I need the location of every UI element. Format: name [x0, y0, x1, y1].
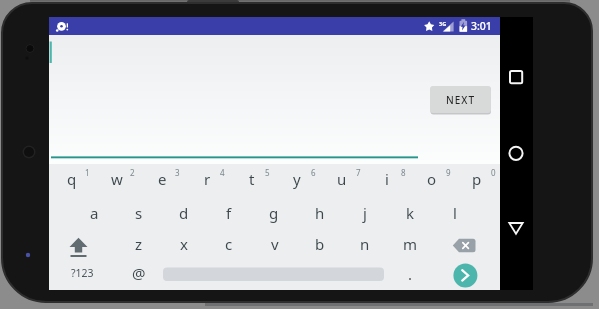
staticText: 3 — [175, 167, 180, 178]
staticText: n — [360, 234, 370, 254]
staticText: v — [271, 234, 279, 254]
staticText: 9 — [446, 167, 451, 178]
staticText: 6 — [311, 167, 316, 178]
button[interactable] — [504, 215, 529, 243]
button[interactable]: o — [410, 163, 454, 195]
staticText: 3:01 — [471, 19, 492, 33]
button[interactable]: NEXT — [430, 86, 491, 113]
staticText: w — [111, 169, 123, 189]
button[interactable]: d — [162, 197, 206, 229]
staticText: l — [453, 203, 457, 223]
button[interactable]: z — [117, 228, 161, 260]
staticText: d — [179, 203, 189, 223]
staticText: u — [337, 169, 347, 189]
staticText: x — [180, 234, 188, 254]
button[interactable]: t — [230, 163, 274, 195]
staticText: t — [249, 169, 255, 189]
staticText: g — [269, 203, 279, 223]
staticText: m — [403, 234, 418, 254]
button[interactable]: r — [185, 163, 229, 195]
button[interactable]: f — [207, 197, 251, 229]
staticText: c — [225, 234, 233, 254]
staticText: e — [158, 169, 167, 189]
staticText: 4 — [220, 167, 225, 178]
button[interactable]: l — [433, 197, 477, 229]
staticText: q — [67, 169, 77, 189]
button[interactable]: u — [320, 163, 364, 195]
button[interactable]: p — [455, 163, 499, 195]
staticText: 2 — [130, 167, 135, 178]
button[interactable] — [66, 234, 91, 259]
button[interactable] — [504, 63, 529, 91]
button[interactable]: v — [253, 228, 297, 260]
staticText: h — [315, 203, 325, 223]
button[interactable]: y — [275, 163, 319, 195]
button[interactable]: e — [140, 163, 184, 195]
staticText: NEXT — [446, 93, 476, 107]
button[interactable]: i — [365, 163, 409, 195]
button[interactable]: s — [117, 197, 161, 229]
button[interactable]: a — [72, 197, 116, 229]
staticText: 0 — [491, 167, 496, 178]
button[interactable]: b — [298, 228, 342, 260]
button[interactable] — [163, 267, 384, 281]
button[interactable]: @ — [117, 257, 161, 289]
staticText: b — [315, 234, 325, 254]
staticText: ?123 — [71, 266, 94, 280]
button[interactable]: ?123 — [60, 257, 104, 289]
staticText: 5 — [265, 167, 270, 178]
staticText: j — [363, 203, 367, 223]
staticText: o — [427, 169, 437, 189]
button[interactable]: . — [388, 258, 432, 290]
button[interactable]: w — [95, 163, 139, 195]
button[interactable] — [453, 263, 478, 288]
staticText: . — [408, 264, 413, 284]
staticText: 1 — [85, 167, 90, 178]
button[interactable]: k — [388, 197, 432, 229]
staticText: i — [385, 169, 389, 189]
button[interactable]: m — [388, 228, 432, 260]
button[interactable]: x — [162, 228, 206, 260]
staticText: y — [293, 169, 301, 189]
button[interactable] — [452, 233, 477, 258]
staticText: k — [406, 203, 415, 223]
staticText: 8 — [401, 167, 406, 178]
button[interactable] — [504, 140, 529, 168]
staticText: s — [135, 203, 143, 223]
staticText: p — [472, 169, 482, 189]
staticText: a — [90, 203, 99, 223]
staticText: 7 — [356, 167, 361, 178]
staticText: @ — [132, 263, 146, 283]
staticText: f — [226, 203, 232, 223]
staticText: z — [135, 234, 143, 254]
button[interactable]: g — [252, 197, 296, 229]
button[interactable]: h — [298, 197, 342, 229]
button[interactable]: c — [207, 228, 251, 260]
staticText: 3G — [439, 20, 447, 27]
staticText: r — [204, 169, 211, 189]
button[interactable]: q — [50, 163, 94, 195]
button[interactable]: n — [343, 228, 387, 260]
button[interactable]: j — [343, 197, 387, 229]
